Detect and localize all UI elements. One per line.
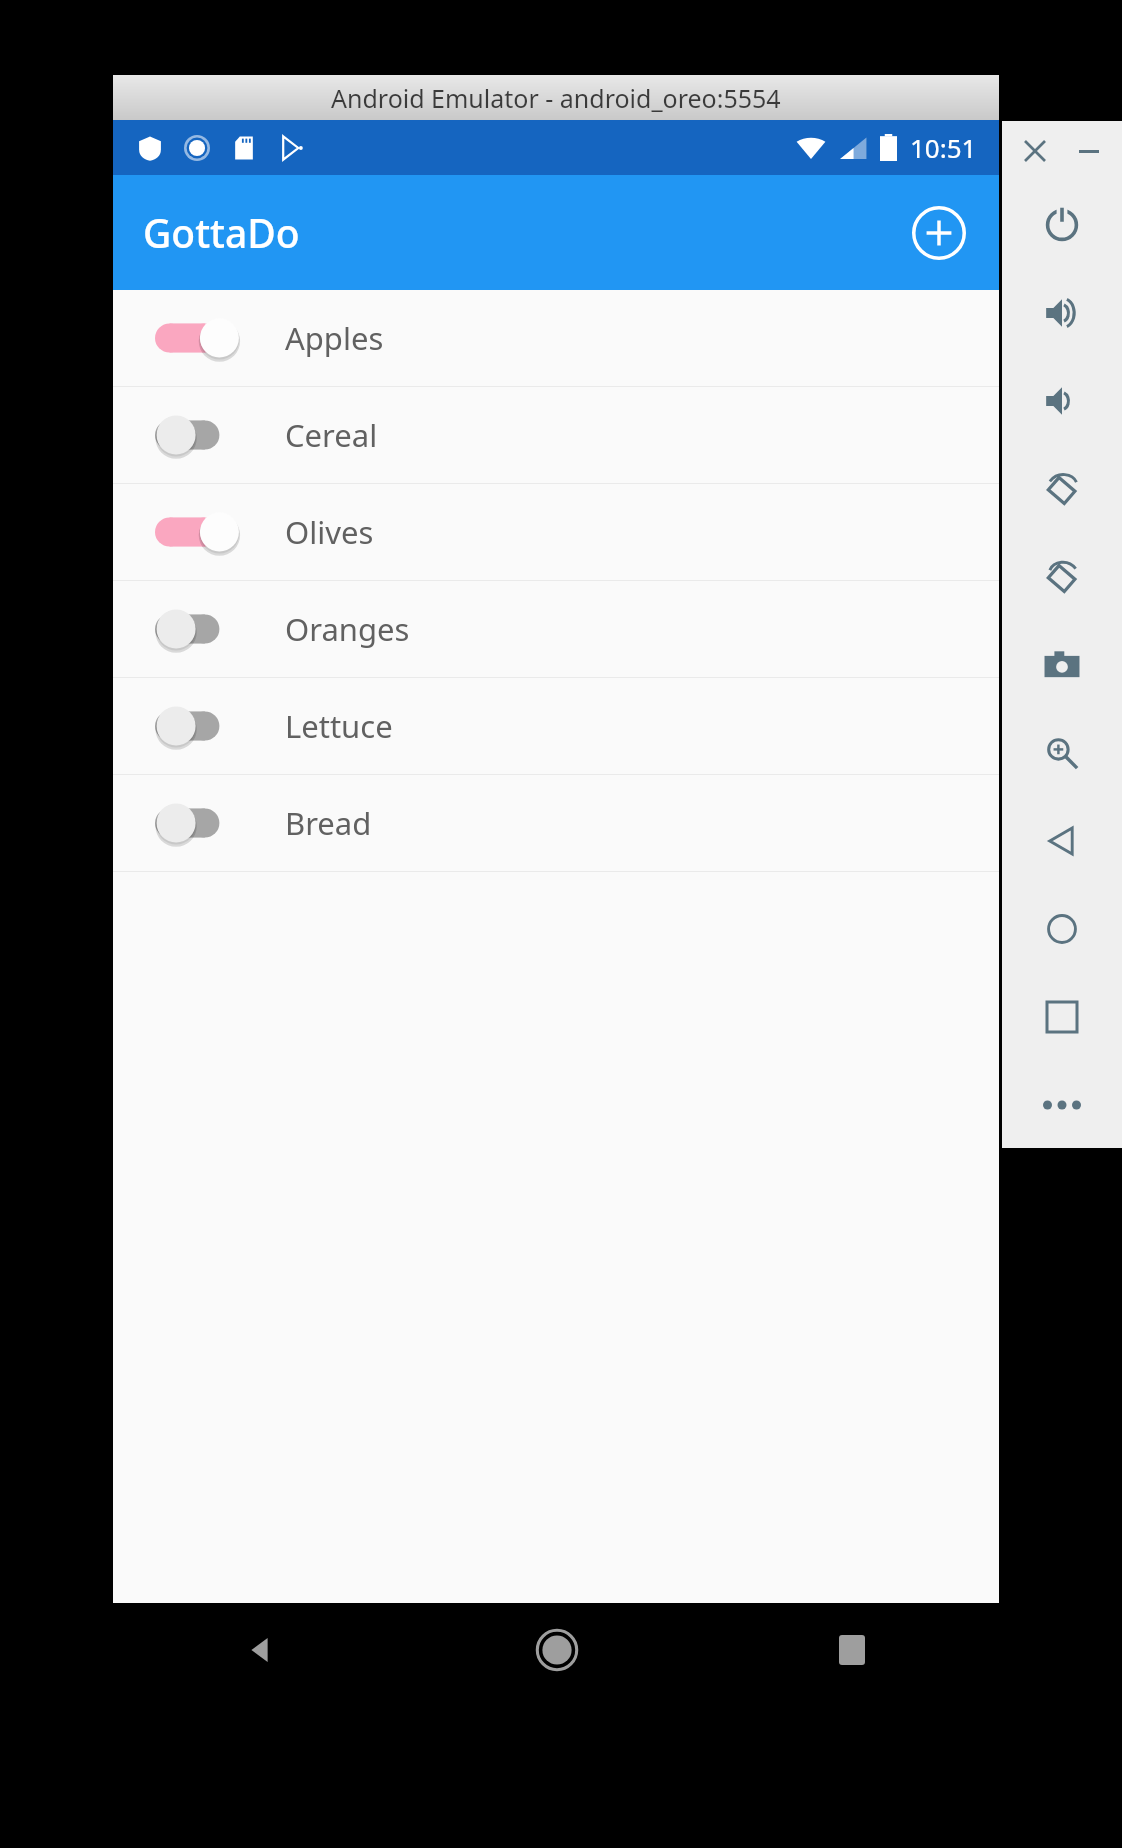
- button[interactable]: Rotate left: [1002, 445, 1122, 533]
- button[interactable]: Not done, off: [155, 792, 247, 854]
- button[interactable]: Done, on: [113, 484, 999, 580]
- staticText: Oranges: [285, 608, 410, 650]
- button[interactable]: Zoom: [1002, 709, 1122, 797]
- button[interactable]: Take screenshot: [1002, 621, 1122, 709]
- button[interactable]: Not done, off: [113, 775, 999, 871]
- button[interactable]: Not done, off: [155, 695, 247, 757]
- button[interactable]: Not done, off: [155, 404, 247, 466]
- button[interactable]: Recent apps: [704, 1603, 999, 1697]
- staticText: Apples: [285, 317, 384, 359]
- staticText: GottaDo: [143, 206, 300, 259]
- button[interactable]: Done, on: [155, 307, 247, 369]
- staticText: Lettuce: [285, 705, 393, 747]
- button[interactable]: Back: [1002, 797, 1122, 885]
- button[interactable]: Volume down: [1002, 357, 1122, 445]
- staticText: 10:51: [910, 130, 977, 165]
- button[interactable]: Done, on: [155, 501, 247, 563]
- button[interactable]: Not done, off: [113, 581, 999, 677]
- button[interactable]: More: [1002, 1061, 1122, 1148]
- staticText: Cereal: [285, 414, 378, 456]
- staticText: Bread: [285, 802, 372, 844]
- staticText: Android Emulator - android_oreo:5554: [331, 81, 781, 115]
- button[interactable]: Add task: [903, 197, 975, 269]
- button[interactable]: Back: [113, 1603, 409, 1697]
- button[interactable]: Done, on: [113, 290, 999, 386]
- button[interactable]: Home: [1002, 885, 1122, 973]
- button[interactable]: Minimize: [1069, 131, 1109, 171]
- button[interactable]: Close: [1015, 131, 1055, 171]
- button[interactable]: Volume up: [1002, 269, 1122, 357]
- button[interactable]: Overview: [1002, 973, 1122, 1061]
- button[interactable]: Power: [1002, 181, 1122, 269]
- button[interactable]: Home: [409, 1603, 704, 1697]
- staticText: Olives: [285, 511, 374, 553]
- button[interactable]: Rotate right: [1002, 533, 1122, 621]
- button[interactable]: Not done, off: [113, 678, 999, 774]
- button[interactable]: Not done, off: [113, 387, 999, 483]
- button[interactable]: Not done, off: [155, 598, 247, 660]
